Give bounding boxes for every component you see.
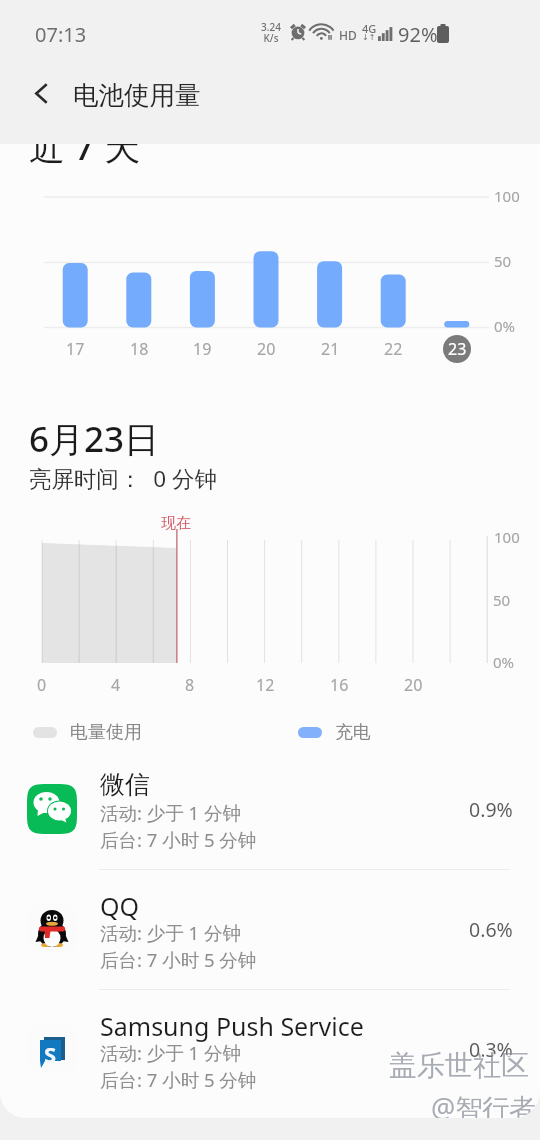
- staticText: 20: [404, 674, 423, 696]
- staticText: QQ: [100, 889, 140, 923]
- staticText: 07:13: [35, 21, 87, 48]
- button[interactable]: 20: [252, 335, 280, 363]
- staticText: 0%: [494, 316, 516, 336]
- staticText: 电池使用量: [73, 79, 201, 111]
- staticText: 微信: [100, 769, 150, 800]
- button[interactable]: QQ: [0, 873, 540, 993]
- staticText: 0.3%: [469, 1036, 513, 1063]
- staticText: 活动: 少于 1 分钟: [100, 800, 241, 825]
- staticText: 16: [330, 674, 349, 696]
- staticText: 6月23日: [29, 415, 160, 463]
- staticText: 8: [185, 674, 195, 696]
- button[interactable]: 23: [443, 335, 471, 363]
- button[interactable]: 电量使用: [33, 721, 142, 744]
- staticText: 0: [37, 674, 47, 696]
- staticText: 活动: 少于 1 分钟: [100, 920, 241, 945]
- staticText: 21: [321, 338, 340, 360]
- button[interactable]: 充电: [298, 721, 371, 744]
- staticText: 电量使用: [70, 721, 142, 744]
- staticText: 100: [494, 186, 520, 206]
- staticText: 盖乐世社区: [391, 1050, 531, 1085]
- staticText: HD: [339, 27, 357, 43]
- staticText: 23: [448, 338, 467, 360]
- button[interactable]: 微信: [0, 753, 540, 873]
- staticText: 现在: [161, 514, 191, 533]
- staticText: @智行者: [433, 1091, 539, 1128]
- staticText: 后台: 7 小时 5 分钟: [100, 947, 257, 972]
- staticText: 充电: [335, 721, 371, 744]
- staticText: 0.9%: [469, 796, 513, 823]
- button[interactable]: S: [0, 993, 540, 1113]
- staticText: 100: [494, 527, 520, 547]
- staticText: 22: [384, 338, 403, 360]
- staticText: S: [44, 1039, 57, 1069]
- button[interactable]: 22: [379, 335, 407, 363]
- staticText: 近 7 天: [29, 122, 141, 171]
- button[interactable]: 17: [61, 335, 89, 363]
- staticText: 19: [193, 338, 212, 360]
- staticText: @智行者: [431, 1089, 537, 1126]
- staticText: 0.6%: [469, 916, 513, 943]
- staticText: 盖乐世社区: [389, 1048, 529, 1083]
- staticText: 后台: 7 小时 5 分钟: [100, 827, 257, 852]
- staticText: 17: [66, 338, 85, 360]
- staticText: Samsung Push Service: [100, 1009, 364, 1043]
- staticText: 50: [494, 251, 512, 271]
- staticText: 20: [257, 338, 276, 360]
- staticText: 92%: [398, 21, 438, 48]
- button[interactable]: 18: [125, 335, 153, 363]
- staticText: 4G: [362, 21, 377, 36]
- staticText: 3.24 K/s: [261, 20, 281, 45]
- staticText: ↓↑: [362, 33, 376, 42]
- staticText: 亮屏时间： 0 分钟: [29, 463, 217, 494]
- button[interactable]: 21: [316, 335, 344, 363]
- staticText: 活动: 少于 1 分钟: [100, 1040, 241, 1065]
- button[interactable]: 19: [188, 335, 216, 363]
- button[interactable]: Back: [11, 62, 71, 124]
- staticText: 50: [493, 590, 511, 610]
- staticText: 4: [111, 674, 121, 696]
- staticText: 18: [130, 338, 149, 360]
- staticText: 0%: [493, 652, 515, 672]
- staticText: 后台: 7 小时 5 分钟: [100, 1067, 257, 1092]
- staticText: 12: [256, 674, 275, 696]
